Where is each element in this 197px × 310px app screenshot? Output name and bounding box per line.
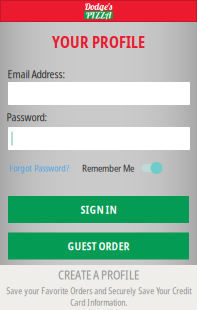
staticText: Remember Me: [82, 161, 134, 175]
staticText: PIZZA: [86, 9, 111, 21]
staticText: CREATE A PROFILE: [58, 267, 139, 283]
staticText: Forgot Password?: [9, 162, 69, 174]
button[interactable]: Forgot Password?: [9, 162, 69, 174]
button[interactable]: Remember Me: [139, 161, 160, 174]
button[interactable]: SIGN IN: [8, 196, 189, 223]
staticText: GUEST ORDER: [67, 239, 129, 253]
staticText: Dodge's: [84, 1, 112, 12]
button[interactable]: CREATE A PROFILE: [58, 267, 139, 283]
staticText: Save your Favorite Orders and Securely S…: [6, 285, 191, 308]
button[interactable]: GUEST ORDER: [8, 232, 189, 259]
staticText: Email Address:: [7, 67, 65, 81]
staticText: YOUR PROFILE: [52, 32, 145, 52]
staticText: SIGN IN: [80, 202, 116, 217]
staticText: Password:: [6, 110, 47, 124]
